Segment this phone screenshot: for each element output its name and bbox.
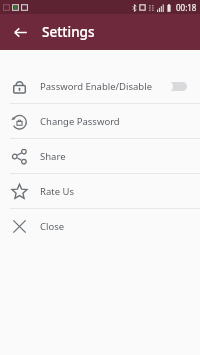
staticText: Rate Us bbox=[40, 185, 74, 198]
button[interactable]: Close bbox=[0, 209, 200, 243]
button[interactable]: Share bbox=[0, 139, 200, 173]
button[interactable]: Rate Us bbox=[0, 174, 200, 208]
button[interactable]: Change Password bbox=[0, 104, 200, 138]
button[interactable]: Password Enable/Disable bbox=[0, 69, 200, 103]
staticText: Share bbox=[40, 150, 66, 163]
button[interactable]: Back bbox=[6, 18, 34, 46]
staticText: Change Password bbox=[40, 115, 120, 128]
staticText: Settings bbox=[42, 23, 95, 41]
staticText: Close bbox=[40, 220, 65, 233]
staticText: Password Enable/Disable bbox=[40, 80, 153, 93]
button[interactable]: Toggle password bbox=[159, 77, 189, 95]
staticText: 00:18 bbox=[176, 2, 197, 13]
